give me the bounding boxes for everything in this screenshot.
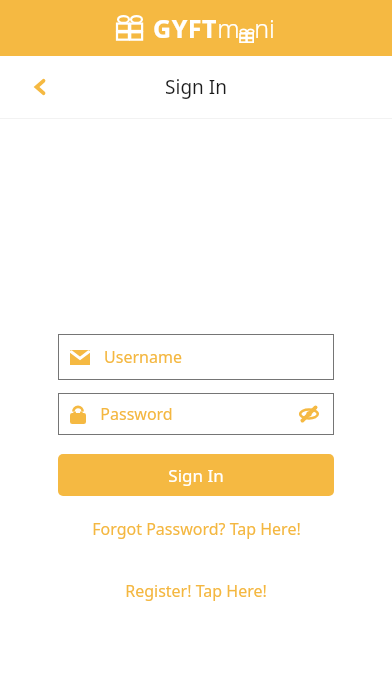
button[interactable]: Forgot Password? Tap Here!: [0, 512, 392, 546]
staticText: Sign In: [165, 74, 227, 100]
staticText: Username: [104, 346, 182, 368]
button[interactable]: Sign In: [58, 454, 334, 496]
staticText: ni: [254, 11, 275, 45]
button[interactable]: Password: [58, 393, 334, 435]
staticText: Register! Tap Here!: [125, 580, 267, 602]
staticText: Password: [100, 403, 173, 425]
staticText: Forgot Password? Tap Here!: [92, 518, 301, 540]
button[interactable]: Back: [18, 65, 62, 109]
button[interactable]: Register! Tap Here!: [0, 574, 392, 608]
button[interactable]: Show password: [296, 401, 322, 427]
button[interactable]: Username: [58, 334, 334, 380]
staticText: GYFT: [153, 11, 217, 45]
staticText: Sign In: [168, 464, 224, 487]
staticText: m: [217, 11, 240, 45]
